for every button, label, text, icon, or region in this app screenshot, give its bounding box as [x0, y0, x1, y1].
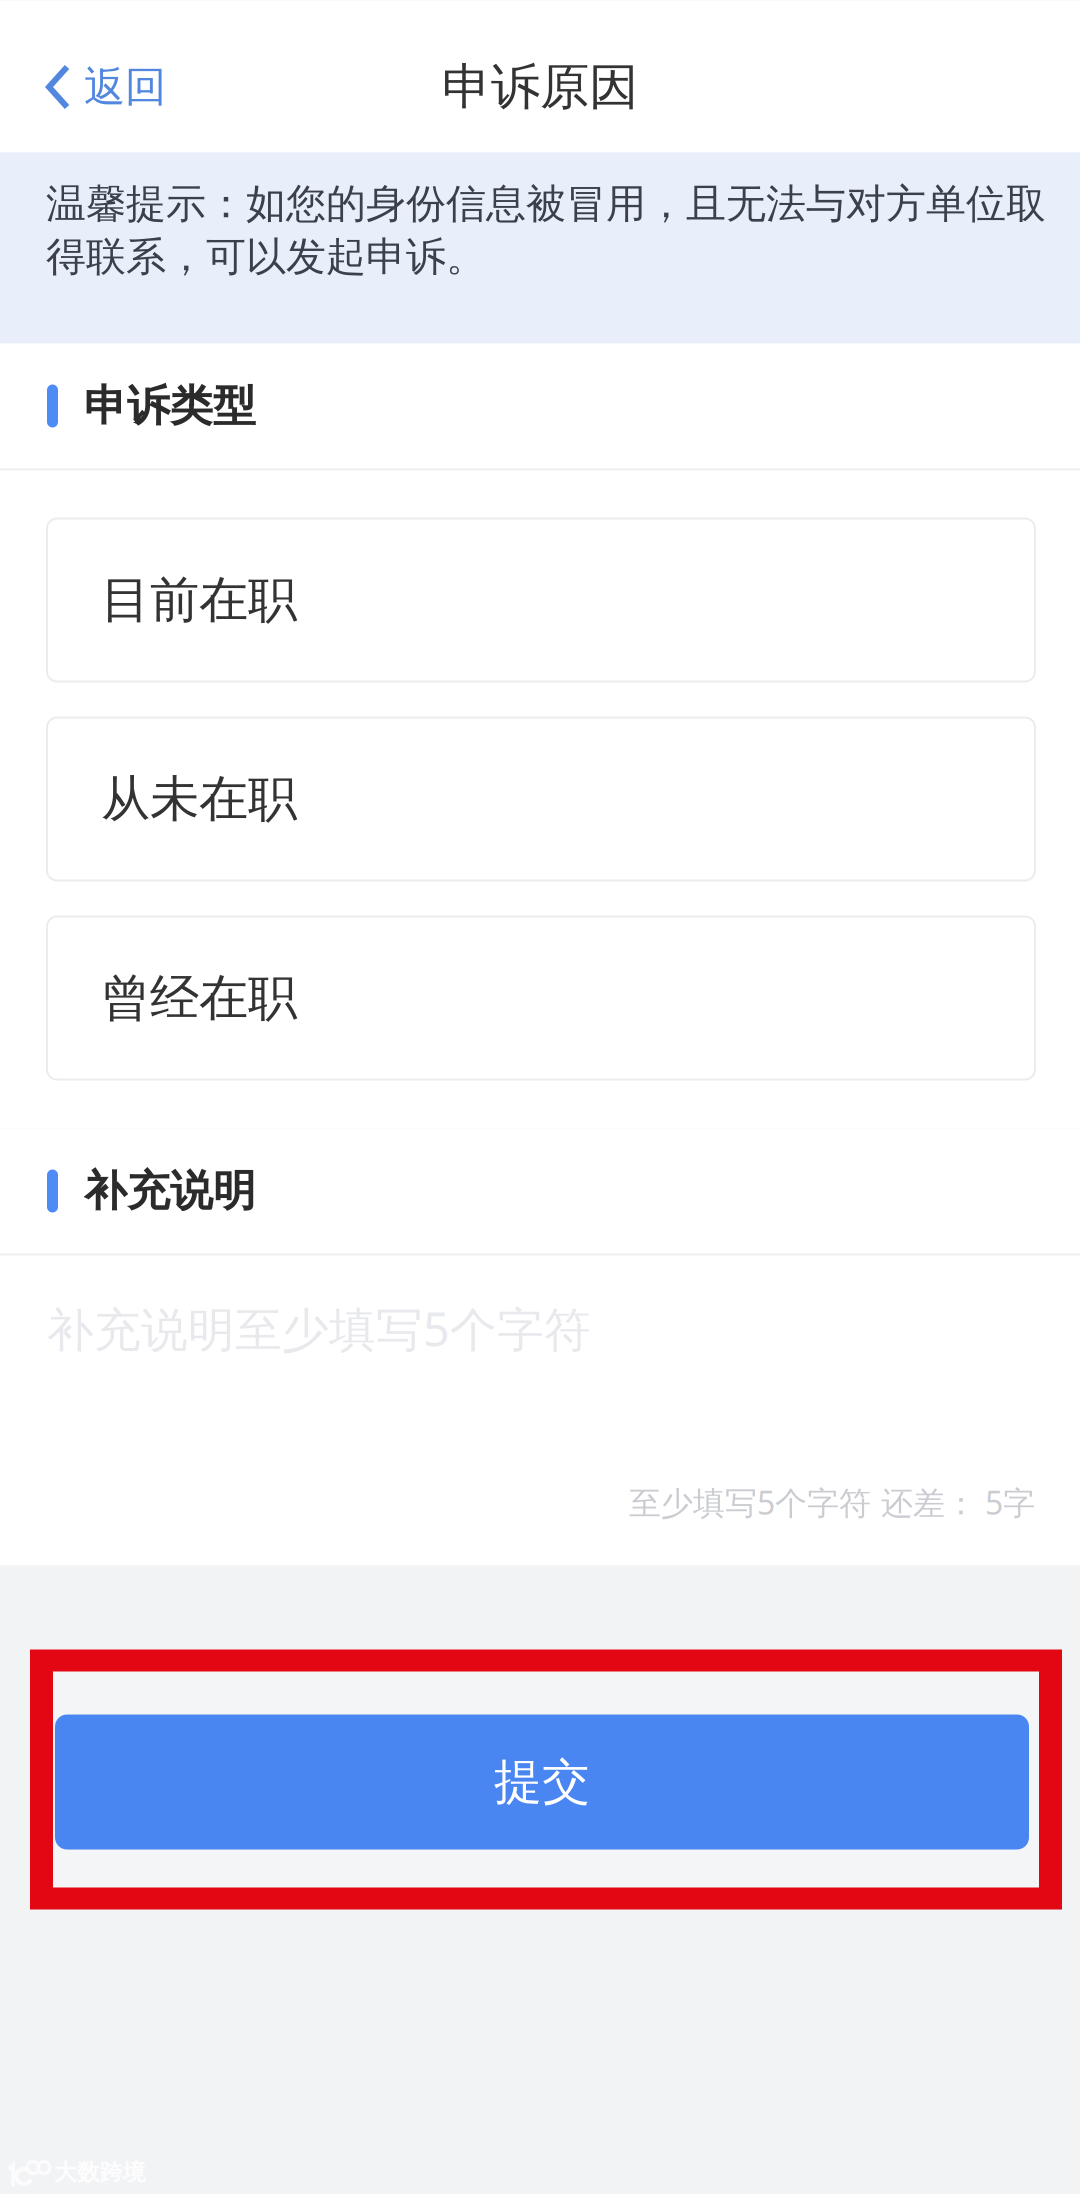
button[interactable]: 提交: [55, 1714, 1029, 1849]
button[interactable]: 曾经在职: [47, 916, 1035, 1079]
button[interactable]: 目前在职: [47, 518, 1035, 681]
button[interactable]: 从未在职: [47, 717, 1035, 880]
staticText: 补充说明至少填写5个字符: [47, 1297, 591, 1359]
button[interactable]: 返回: [0, 21, 192, 152]
staticText: 温馨提示：如您的身份信息被冒用，且无法与对方单位取: [46, 179, 1046, 228]
staticText: 申诉原因: [442, 57, 638, 117]
staticText: 大数跨境: [54, 2159, 146, 2186]
staticText: 曾经在职: [101, 968, 297, 1028]
staticText: 补充说明: [84, 1165, 256, 1217]
staticText: 至少填写5个字符 还差： 5字: [629, 1481, 1035, 1523]
staticText: 从未在职: [101, 769, 297, 829]
staticText: 提交: [494, 1752, 590, 1811]
staticText: 得联系，可以发起申诉。: [46, 232, 486, 281]
staticText: 返回: [84, 62, 166, 112]
staticText: 申诉类型: [84, 380, 256, 432]
staticText: 目前在职: [101, 570, 297, 630]
